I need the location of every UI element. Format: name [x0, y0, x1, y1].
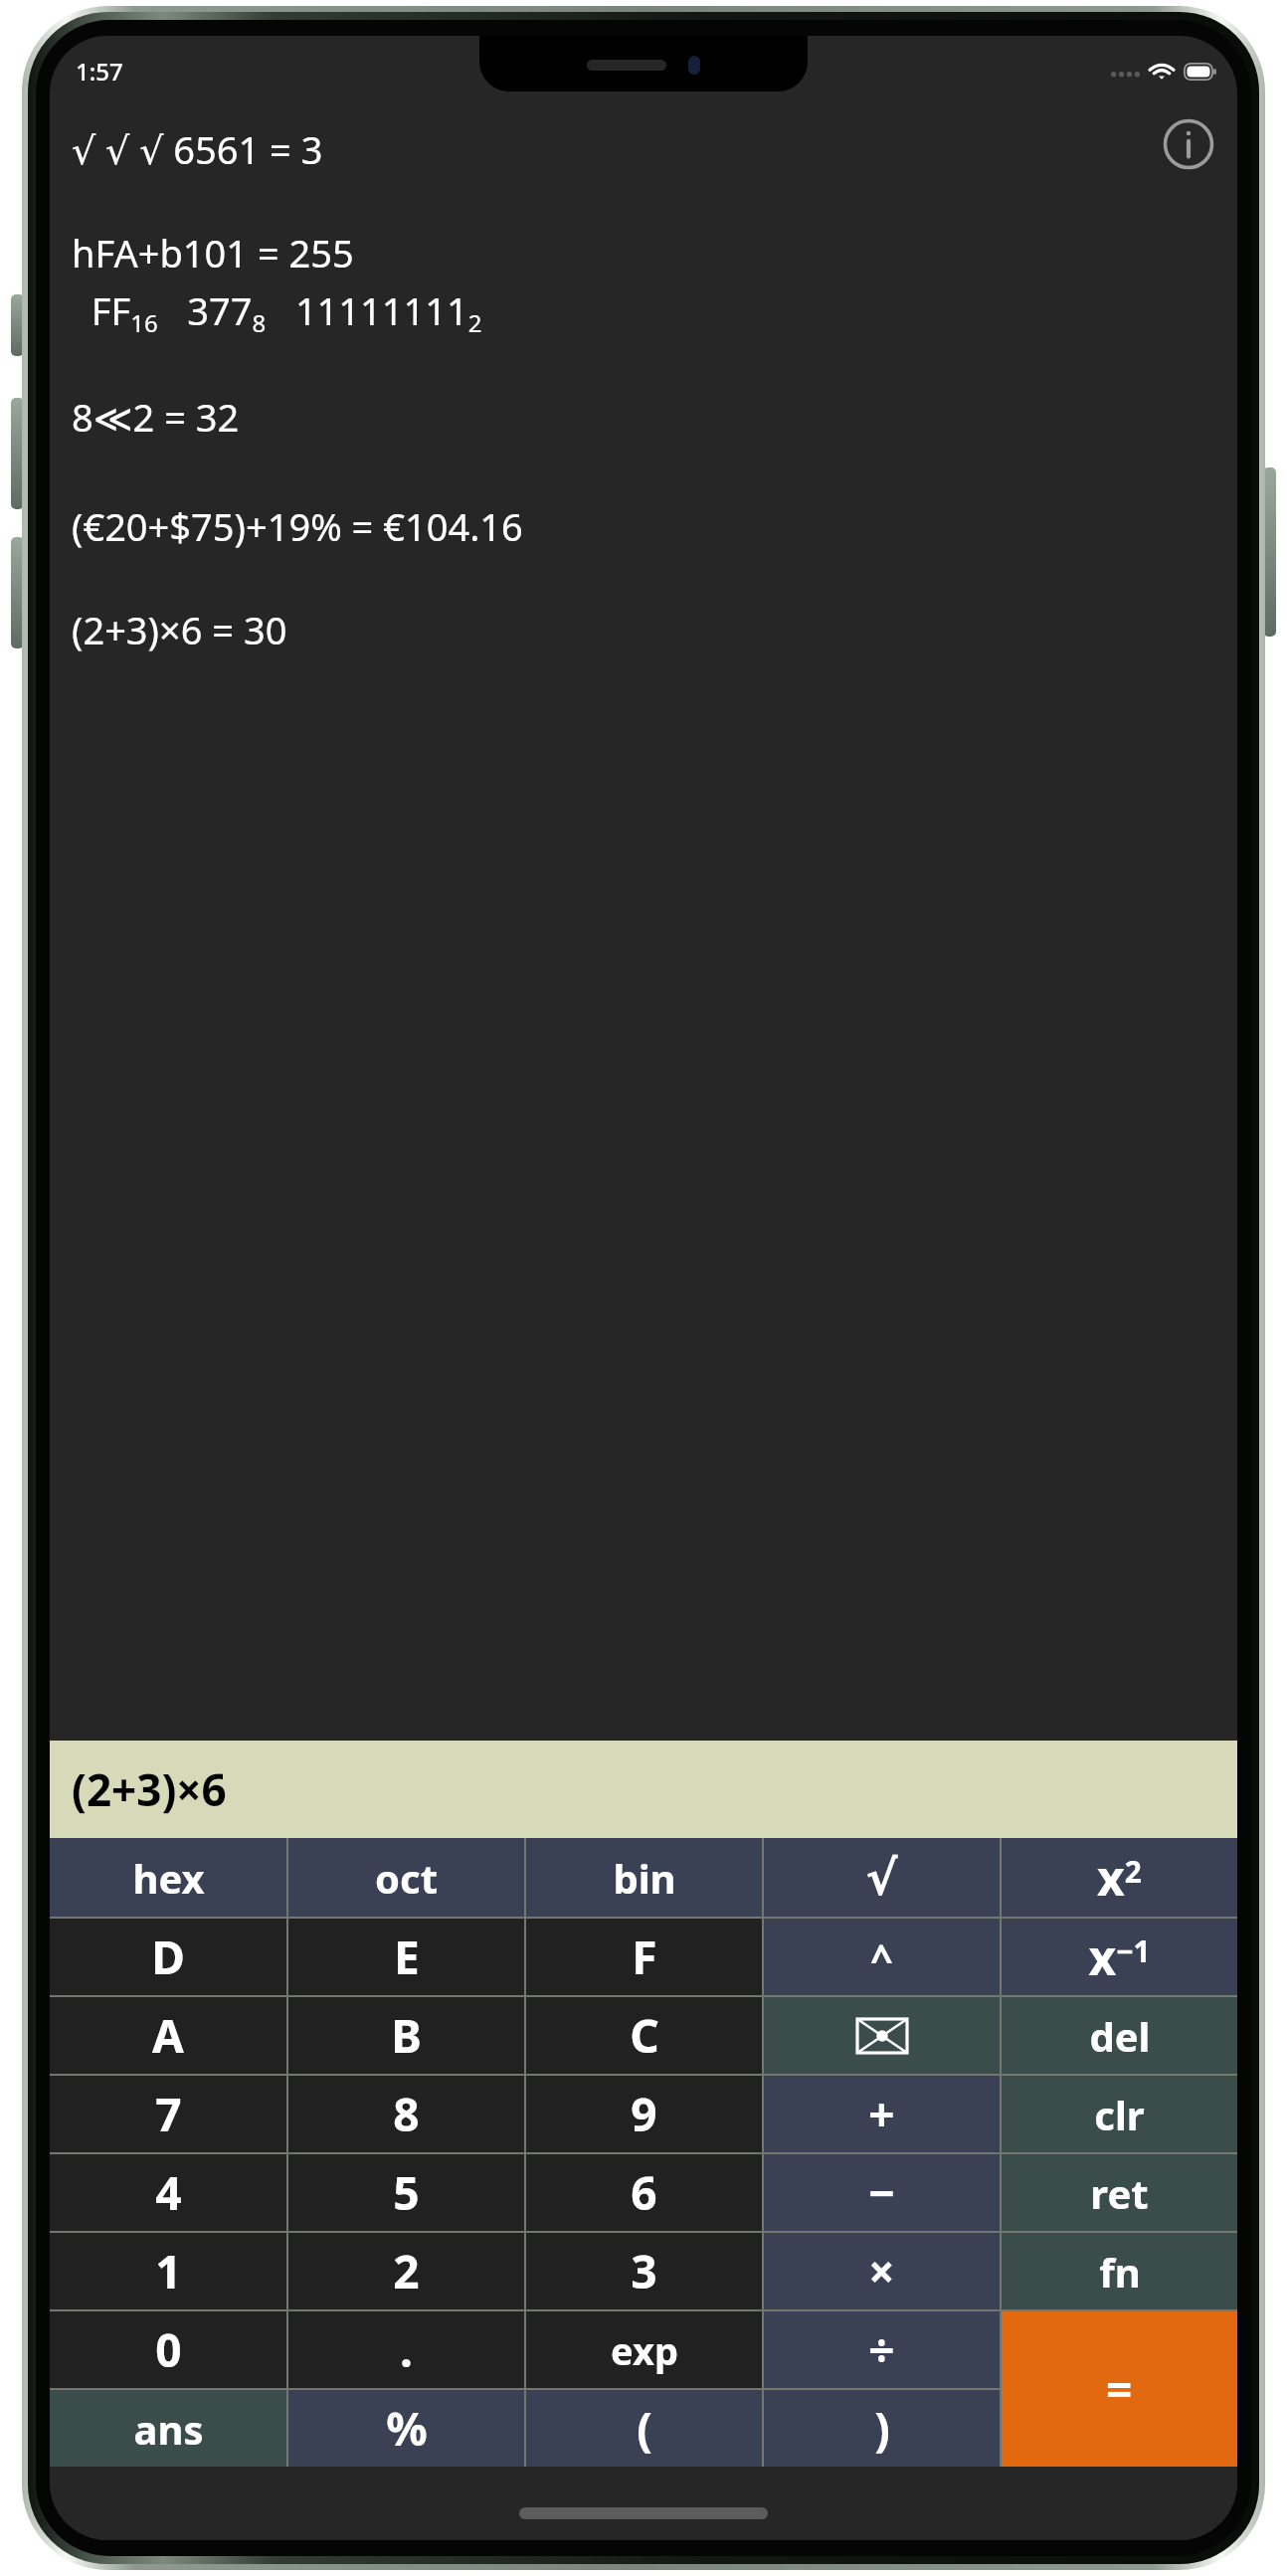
button[interactable]: hex — [50, 1838, 286, 1917]
button[interactable]: Send — [764, 1997, 1000, 2074]
staticText: 2 — [393, 2240, 420, 2302]
button[interactable]: bin — [526, 1838, 762, 1917]
button[interactable]: D — [50, 1919, 286, 1995]
button[interactable]: C — [526, 1997, 762, 2074]
button[interactable]: x2 — [1002, 1838, 1237, 1917]
button[interactable]: E — [288, 1919, 524, 1995]
staticText: 8 — [393, 2083, 420, 2145]
staticText: 3 — [631, 2240, 657, 2302]
button[interactable]: 4 — [50, 2154, 286, 2231]
staticText: − — [868, 2161, 895, 2224]
button[interactable]: − — [764, 2154, 1000, 2231]
staticText: √ — [865, 1850, 898, 1906]
staticText: (2+3)×6 — [72, 1759, 227, 1819]
button[interactable]: 3 — [526, 2233, 762, 2309]
staticText: 6 — [631, 2161, 657, 2224]
button[interactable]: 1 — [50, 2233, 286, 2309]
button[interactable]: x−1 — [1002, 1919, 1237, 1995]
staticText: hex — [132, 1851, 205, 1905]
staticText: 5 — [393, 2161, 420, 2224]
staticText: (€20+$75)+19% = €104.16 — [72, 500, 523, 552]
button[interactable]: √ — [764, 1838, 1000, 1917]
button[interactable]: ans — [50, 2390, 286, 2467]
button[interactable]: 0 — [50, 2311, 286, 2388]
staticText: ) — [874, 2397, 890, 2460]
staticText: ÷ — [868, 2318, 895, 2381]
button[interactable]: exp — [526, 2311, 762, 2388]
button[interactable]: ^ — [764, 1919, 1000, 1995]
staticText: A — [152, 2004, 184, 2067]
button[interactable]: 2 — [288, 2233, 524, 2309]
button[interactable]: + — [764, 2076, 1000, 2152]
staticText: FF16 3778 111111112 — [72, 284, 482, 339]
button[interactable]: fn — [1002, 2233, 1237, 2309]
staticText: D — [151, 1926, 185, 1988]
staticText: 8≪2 = 32 — [72, 391, 240, 443]
staticText: 4 — [155, 2161, 182, 2224]
staticText: F — [632, 1926, 657, 1988]
staticText: 1:57 — [76, 55, 123, 88]
button[interactable]: B — [288, 1997, 524, 2074]
staticText: ^ — [870, 1931, 893, 1984]
staticText: x−1 — [1088, 1925, 1151, 1989]
staticText: 1 — [155, 2240, 182, 2302]
button[interactable]: ÷ — [764, 2311, 1000, 2388]
staticText: fn — [1099, 2245, 1141, 2299]
staticText: 0 — [155, 2318, 182, 2381]
staticText: E — [394, 1926, 420, 1988]
button[interactable]: (2+3)×6 — [50, 1741, 1237, 1838]
button[interactable]: ) — [764, 2390, 1000, 2467]
staticText: ans — [133, 2402, 204, 2456]
button[interactable]: = — [1002, 2311, 1237, 2467]
staticText: ret — [1090, 2166, 1149, 2220]
button[interactable]: A — [50, 1997, 286, 2074]
button[interactable]: F — [526, 1919, 762, 1995]
staticText: % — [386, 2397, 428, 2460]
staticText: exp — [611, 2324, 678, 2376]
button[interactable]: Info — [1162, 117, 1215, 171]
staticText: del — [1089, 2009, 1151, 2063]
button[interactable]: % — [288, 2390, 524, 2467]
staticText: hFA+b101 = 255 — [72, 227, 354, 278]
button[interactable]: oct — [288, 1838, 524, 1917]
button[interactable]: 6 — [526, 2154, 762, 2231]
button[interactable]: 7 — [50, 2076, 286, 2152]
button[interactable]: ( — [526, 2390, 762, 2467]
button[interactable]: clr — [1002, 2076, 1237, 2152]
staticText: clr — [1094, 2088, 1145, 2141]
staticText: = — [1106, 2358, 1133, 2421]
button[interactable]: . — [288, 2311, 524, 2388]
staticText: × — [868, 2240, 895, 2302]
staticText: oct — [375, 1851, 438, 1905]
button[interactable]: × — [764, 2233, 1000, 2309]
button[interactable]: del — [1002, 1997, 1237, 2074]
button[interactable]: ret — [1002, 2154, 1237, 2231]
staticText: + — [868, 2083, 895, 2145]
staticText: (2+3)×6 = 30 — [72, 604, 287, 655]
button[interactable]: 9 — [526, 2076, 762, 2152]
staticText: B — [391, 2004, 422, 2067]
staticText: 7 — [155, 2083, 182, 2145]
staticText: √ √ √ 6561 = 3 — [72, 123, 323, 175]
staticText: x2 — [1097, 1845, 1142, 1910]
staticText: ( — [637, 2397, 652, 2460]
staticText: bin — [613, 1851, 676, 1905]
button[interactable]: 8 — [288, 2076, 524, 2152]
button[interactable]: 5 — [288, 2154, 524, 2231]
staticText: 9 — [631, 2083, 657, 2145]
staticText: . — [400, 2318, 413, 2381]
staticText: C — [630, 2004, 659, 2067]
